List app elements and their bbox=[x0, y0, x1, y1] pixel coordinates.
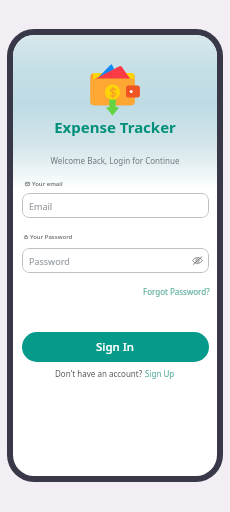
button[interactable]: Sign Up bbox=[145, 368, 175, 379]
staticText: Your Password bbox=[30, 233, 73, 241]
staticText: Don't have an account? bbox=[55, 368, 145, 379]
staticText: Forgot Password? bbox=[143, 286, 210, 297]
button[interactable]: Forgot Password? bbox=[142, 285, 211, 298]
staticText: Expense Tracker bbox=[13, 117, 217, 137]
staticText: Welcome Back, Login for Continue bbox=[13, 155, 217, 166]
staticText: Your email bbox=[32, 180, 63, 188]
staticText: Sign Up bbox=[145, 368, 175, 379]
button[interactable]: Show password bbox=[191, 254, 204, 267]
button[interactable]: Sign In bbox=[22, 332, 209, 362]
button[interactable]: Email bbox=[22, 193, 209, 218]
staticText: Email bbox=[29, 200, 53, 212]
staticText: Password bbox=[29, 255, 70, 267]
staticText: Sign In bbox=[96, 339, 135, 355]
button[interactable]: Password bbox=[22, 248, 209, 273]
